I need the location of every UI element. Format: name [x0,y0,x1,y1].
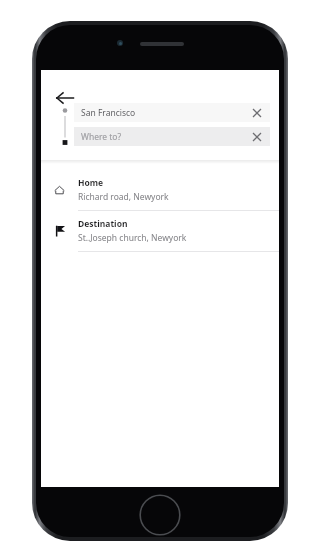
staticText: Richard road, Newyork [78,191,169,203]
staticText: Where to? [81,131,250,143]
button[interactable]: Clear [250,130,264,144]
button[interactable]: San Francisco [74,103,270,122]
button[interactable]: Back [51,84,79,112]
button[interactable]: Destination [41,211,279,251]
button[interactable]: Clear [250,106,264,120]
staticText: Destination [78,218,128,230]
staticText: Home [78,177,104,189]
staticText: St..Joseph church, Newyork [78,232,187,244]
button[interactable]: Home [41,170,279,210]
staticText: San Francisco [81,107,250,119]
button[interactable]: Where to? [74,127,270,146]
